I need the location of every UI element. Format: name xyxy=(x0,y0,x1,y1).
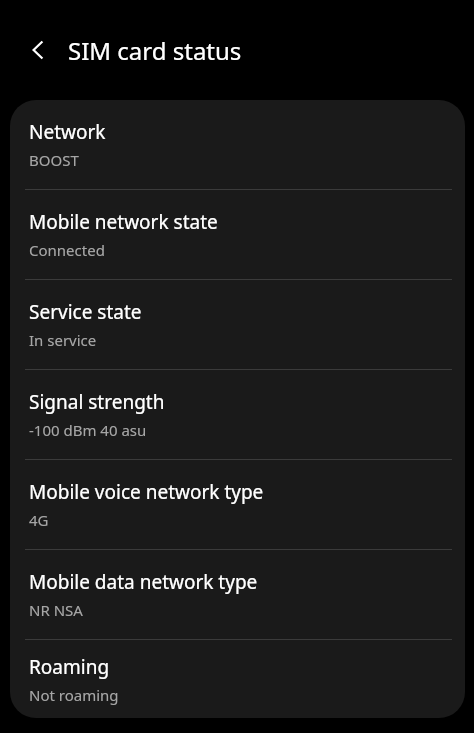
staticText: Network xyxy=(29,119,106,145)
button[interactable]: Mobile network state xyxy=(10,190,465,279)
button[interactable]: Mobile voice network type xyxy=(10,460,465,549)
button[interactable]: Back xyxy=(16,28,60,72)
staticText: Mobile network state xyxy=(29,209,218,235)
button[interactable]: Service state xyxy=(10,280,465,369)
button[interactable]: Mobile data network type xyxy=(10,550,465,639)
staticText: SIM card status xyxy=(68,34,242,67)
staticText: NR NSA xyxy=(29,600,83,620)
staticText: Mobile voice network type xyxy=(29,479,264,505)
staticText: In service xyxy=(29,330,97,350)
staticText: Not roaming xyxy=(29,685,119,705)
staticText: Service state xyxy=(29,299,142,325)
staticText: Mobile data network type xyxy=(29,569,258,595)
staticText: -100 dBm 40 asu xyxy=(29,420,147,440)
staticText: Connected xyxy=(29,240,105,260)
button[interactable]: Signal strength xyxy=(10,370,465,459)
staticText: 4G xyxy=(29,510,49,530)
staticText: Roaming xyxy=(29,654,110,680)
staticText: Signal strength xyxy=(29,389,165,415)
staticText: BOOST xyxy=(29,150,79,170)
button[interactable]: Roaming xyxy=(10,640,465,718)
button[interactable]: Network xyxy=(10,100,465,189)
